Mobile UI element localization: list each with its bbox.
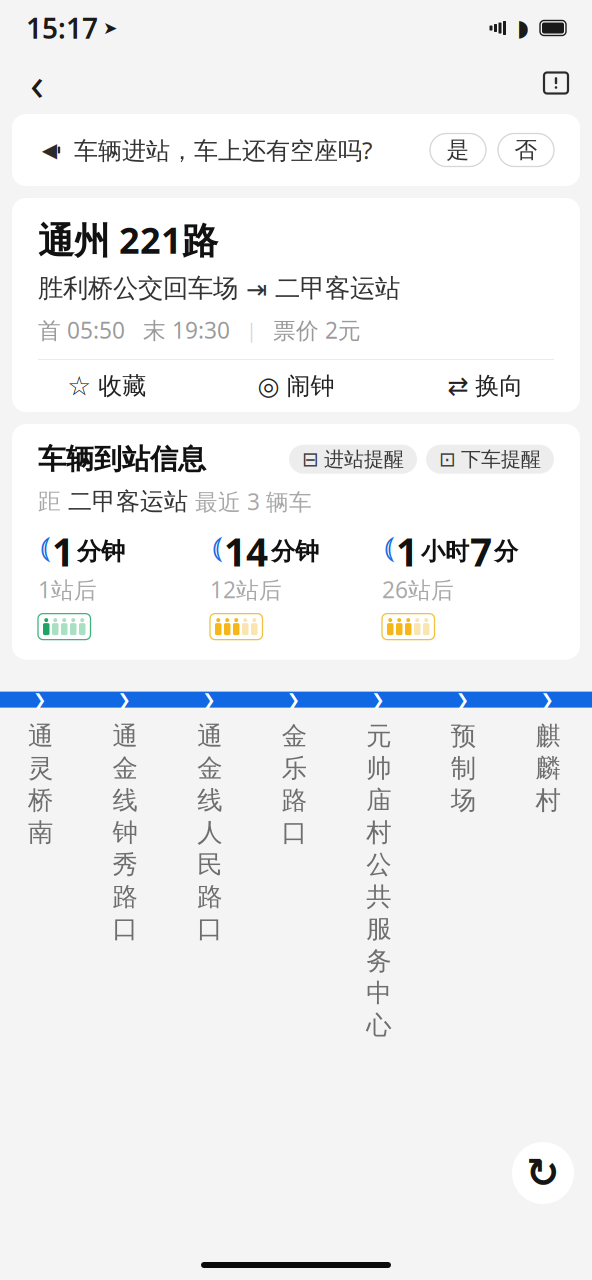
staticText: 首 05:50: [38, 315, 125, 345]
staticText: 末 19:30: [143, 315, 230, 345]
staticText: 7: [470, 526, 492, 577]
staticText: 分钟: [77, 537, 125, 566]
staticText: 是: [446, 136, 469, 164]
staticText: 分钟: [271, 537, 319, 566]
staticText: 否: [514, 136, 537, 164]
staticText: ☆: [67, 371, 91, 401]
staticText: 车辆到站信息: [38, 442, 206, 476]
staticText: 服: [366, 913, 391, 944]
staticText: ⦅: [210, 539, 224, 564]
staticText: 口: [282, 817, 307, 848]
staticText: 钟: [113, 817, 138, 848]
staticText: 14: [224, 526, 268, 577]
staticText: 金: [113, 753, 138, 784]
staticText: 线: [113, 785, 138, 816]
staticText: ⦅: [382, 539, 396, 564]
staticText: 距: [38, 487, 68, 515]
staticText: 小时: [421, 537, 469, 566]
staticText: 南: [28, 817, 53, 848]
button[interactable]: 是: [430, 133, 486, 166]
staticText: 通州 221路: [38, 216, 218, 264]
staticText: |: [246, 317, 257, 343]
staticText: 民: [197, 849, 222, 880]
staticText: ‹: [30, 53, 44, 113]
staticText: ❯: [202, 690, 215, 709]
staticText: ⊡: [439, 448, 456, 471]
staticText: 路: [113, 881, 138, 912]
staticText: ❯: [287, 690, 300, 709]
staticText: 乐: [282, 753, 307, 784]
staticText: 金: [197, 753, 222, 784]
staticText: 金: [282, 721, 307, 752]
staticText: 制: [451, 753, 476, 784]
button[interactable]: Back: [14, 60, 60, 106]
staticText: ❯: [118, 690, 131, 709]
staticText: ↻: [526, 1150, 560, 1196]
button[interactable]: 金: [254, 721, 338, 1050]
staticText: 心: [366, 1010, 391, 1041]
staticText: 灵: [28, 753, 53, 784]
button[interactable]: 预: [423, 721, 507, 1050]
staticText: ❯: [540, 690, 553, 709]
staticText: 共: [366, 881, 391, 912]
staticText: ◀: [42, 139, 57, 161]
staticText: 二甲客运站: [68, 487, 188, 516]
button[interactable]: Feedback: [534, 61, 578, 105]
staticText: 换向: [475, 371, 523, 401]
staticText: 1站后: [38, 574, 97, 605]
staticText: 通: [28, 721, 53, 752]
staticText: 路: [282, 785, 307, 816]
staticText: 务: [366, 945, 391, 976]
staticText: 麟: [535, 753, 560, 784]
staticText: 最近 3 辆车: [188, 486, 312, 516]
staticText: 闹钟: [286, 371, 334, 401]
button[interactable]: ⊟: [289, 445, 417, 474]
staticText: 15:17: [26, 9, 98, 47]
button[interactable]: 否: [498, 133, 554, 166]
button[interactable]: Refresh: [512, 1142, 574, 1204]
button[interactable]: 元: [338, 721, 423, 1050]
button[interactable]: ◎: [201, 360, 391, 412]
staticText: 口: [197, 913, 222, 944]
staticText: 通: [197, 721, 222, 752]
staticText: ◎: [257, 372, 279, 400]
staticText: 通: [113, 721, 138, 752]
staticText: ⇄: [447, 372, 468, 400]
staticText: 中: [366, 977, 391, 1009]
staticText: 秀: [113, 849, 138, 880]
staticText: 预: [451, 721, 476, 752]
button[interactable]: ⊡: [426, 445, 554, 474]
staticText: 票价 2元: [273, 315, 361, 345]
staticText: 场: [451, 785, 476, 816]
button[interactable]: ⇄: [391, 360, 580, 412]
staticText: 桥: [28, 785, 53, 816]
staticText: 人: [197, 817, 222, 848]
staticText: 1: [52, 526, 74, 577]
staticText: 村: [535, 785, 560, 816]
staticText: 12站后: [210, 574, 282, 605]
staticText: 村: [366, 817, 391, 848]
staticText: 公: [366, 849, 391, 880]
button[interactable]: 通: [169, 721, 254, 1050]
staticText: ➤: [103, 18, 118, 38]
staticText: ❯: [33, 690, 46, 709]
staticText: 元: [366, 721, 391, 752]
staticText: 1: [396, 526, 418, 577]
staticText: 26站后: [382, 574, 454, 605]
staticText: ⊟: [302, 448, 319, 471]
button[interactable]: 通: [85, 721, 169, 1050]
staticText: 庙: [366, 785, 391, 816]
staticText: ◗: [517, 15, 529, 41]
button[interactable]: 通: [0, 721, 85, 1050]
staticText: 帅: [366, 753, 391, 784]
staticText: 线: [197, 785, 222, 816]
staticText: 路: [197, 881, 222, 912]
staticText: 收藏: [98, 371, 146, 401]
staticText: 口: [113, 913, 138, 944]
button[interactable]: ☆: [12, 360, 201, 412]
staticText: 车辆进站，车上还有空座吗?: [74, 134, 372, 166]
staticText: ❯: [371, 690, 384, 709]
staticText: ❯: [456, 690, 469, 709]
staticText: 麒: [535, 721, 560, 752]
button[interactable]: 麒: [507, 721, 592, 1050]
